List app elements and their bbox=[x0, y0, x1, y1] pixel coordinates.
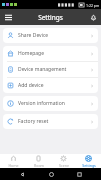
staticText: Home bbox=[8, 163, 19, 168]
button[interactable]: Notifications bbox=[87, 11, 99, 23]
button[interactable]: Device management bbox=[3, 62, 98, 77]
button[interactable]: Homepage bbox=[3, 46, 98, 61]
button[interactable]: Open navigation menu bbox=[2, 11, 14, 23]
staticText: Add device bbox=[18, 82, 90, 89]
button[interactable]: Factory reset bbox=[3, 114, 98, 129]
button[interactable]: Add device bbox=[3, 78, 98, 93]
staticText: Homepage bbox=[18, 50, 90, 57]
button[interactable]: Share Device bbox=[3, 28, 98, 43]
button[interactable]: Version information bbox=[3, 96, 98, 111]
button[interactable]: Back bbox=[16, 168, 28, 180]
staticText: Settings bbox=[38, 13, 63, 22]
staticText: Share Device bbox=[18, 32, 90, 39]
button[interactable]: Settings bbox=[76, 154, 101, 168]
staticText: 1:22 pm bbox=[86, 3, 100, 8]
staticText: Factory reset bbox=[18, 118, 90, 125]
staticText: Settings bbox=[82, 163, 96, 168]
button[interactable]: Home bbox=[0, 154, 26, 168]
staticText: Version information bbox=[18, 100, 90, 107]
button[interactable]: Scene bbox=[51, 154, 76, 168]
button[interactable]: Room bbox=[26, 154, 51, 168]
button[interactable]: Recent apps bbox=[73, 168, 85, 180]
staticText: Device management bbox=[18, 66, 90, 73]
staticText: Scene bbox=[59, 163, 69, 168]
button[interactable]: Home bbox=[45, 168, 57, 180]
staticText: Room bbox=[34, 163, 44, 168]
